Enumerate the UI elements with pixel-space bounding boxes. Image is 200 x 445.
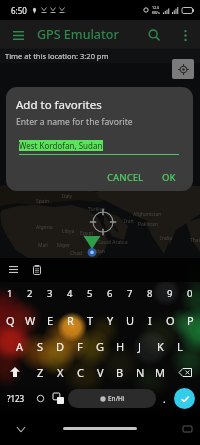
button[interactable]: Keyboard settings xyxy=(6,262,21,277)
button[interactable]: X xyxy=(50,359,70,385)
staticText: India xyxy=(160,235,172,242)
button[interactable]: Shift xyxy=(0,359,30,385)
staticText: 6:50 xyxy=(11,5,27,16)
staticText: Z xyxy=(37,365,44,380)
button[interactable]: F xyxy=(70,334,90,359)
button[interactable]: W xyxy=(20,307,40,334)
button[interactable]: O xyxy=(160,307,180,334)
staticText: ?123 xyxy=(7,393,25,404)
button[interactable]: B xyxy=(110,359,130,385)
staticText: B xyxy=(116,365,124,380)
staticText: En/Hi xyxy=(108,394,125,403)
button[interactable]: Y xyxy=(100,307,120,334)
staticText: KB/s xyxy=(152,10,160,15)
button[interactable]: R xyxy=(60,307,80,334)
staticText: P xyxy=(187,313,194,328)
button[interactable]: N xyxy=(130,359,150,385)
button[interactable]: C xyxy=(70,359,90,385)
button[interactable]: 3 xyxy=(40,280,60,307)
button[interactable]: Hide keyboard xyxy=(13,421,29,437)
button[interactable]: Enter xyxy=(174,388,195,409)
button[interactable]: I xyxy=(140,307,160,334)
staticText: L xyxy=(177,339,183,354)
staticText: Niger xyxy=(57,242,71,249)
staticText: M xyxy=(155,365,165,380)
button[interactable]: K xyxy=(150,334,170,359)
button[interactable]: H xyxy=(110,334,130,359)
button[interactable]: 6 xyxy=(100,280,120,307)
staticText: E xyxy=(47,313,54,328)
staticText: Spain xyxy=(36,198,50,205)
staticText: GPS Emulator xyxy=(37,26,119,43)
staticText: 7 xyxy=(127,287,133,300)
staticText: Enter a name for the favorite xyxy=(16,116,133,128)
button[interactable]: Translate xyxy=(48,385,68,412)
staticText: F xyxy=(77,339,83,354)
button[interactable]: M xyxy=(150,359,170,385)
staticText: Sudan xyxy=(90,248,105,255)
staticText: Iran xyxy=(124,218,134,225)
button[interactable]: More options xyxy=(173,23,197,47)
button[interactable]: Q xyxy=(0,307,20,334)
staticText: 3 xyxy=(47,287,53,300)
staticText: Time at this location: 3:20 pm xyxy=(5,51,109,61)
staticText: Libya xyxy=(62,228,75,235)
button[interactable]: Clipboard xyxy=(29,262,44,277)
button[interactable]: 4 xyxy=(60,280,80,307)
button[interactable]: Backspace xyxy=(170,359,200,385)
button[interactable]: P xyxy=(180,307,200,334)
staticText: West Kordofan, Sudan xyxy=(19,140,103,151)
staticText: Egypt xyxy=(80,230,94,237)
button[interactable]: ?123 xyxy=(0,385,32,412)
button[interactable]: 8 xyxy=(140,280,160,307)
button[interactable]: Open navigation drawer xyxy=(5,22,31,48)
button[interactable]: L xyxy=(170,334,190,359)
button[interactable]: U xyxy=(120,307,140,334)
staticText: V xyxy=(97,365,104,380)
button[interactable]: 1 xyxy=(0,280,20,307)
button[interactable]: 5 xyxy=(80,280,100,307)
staticText: 8 xyxy=(147,287,153,300)
staticText: H xyxy=(116,339,125,354)
button[interactable]: V xyxy=(90,359,110,385)
staticText: A xyxy=(16,339,24,354)
staticText: R xyxy=(67,313,74,328)
staticText: K xyxy=(157,339,164,354)
staticText: Y xyxy=(107,313,114,328)
button[interactable]: J xyxy=(130,334,150,359)
staticText: 9 xyxy=(167,287,173,300)
staticText: 6 xyxy=(107,287,113,300)
staticText: T xyxy=(87,313,94,328)
staticText: U xyxy=(126,313,135,328)
staticText: W xyxy=(25,313,36,328)
staticText: C xyxy=(77,365,84,380)
button[interactable]: Search xyxy=(141,22,167,48)
button[interactable]: D xyxy=(50,334,70,359)
button[interactable]: Z xyxy=(30,359,50,385)
button[interactable]: . xyxy=(156,385,172,412)
button[interactable]: T xyxy=(80,307,100,334)
staticText: 0 xyxy=(187,287,193,300)
button[interactable]: 7 xyxy=(120,280,140,307)
staticText: D xyxy=(56,339,65,354)
button[interactable]: OK xyxy=(156,166,182,189)
button[interactable]: CANCEL xyxy=(101,166,150,189)
staticText: O xyxy=(166,313,175,328)
staticText: CANCEL xyxy=(107,171,144,184)
staticText: N xyxy=(136,365,145,380)
staticText: I xyxy=(148,313,152,328)
button[interactable]: Emoji xyxy=(32,385,48,412)
button[interactable]: S xyxy=(30,334,50,359)
staticText: 2 xyxy=(27,287,33,300)
button[interactable]: En/Hi xyxy=(68,389,156,408)
button[interactable]: My location xyxy=(172,59,194,79)
button[interactable]: 9 xyxy=(160,280,180,307)
staticText: Chad xyxy=(70,250,83,257)
staticText: Türkiye xyxy=(88,206,106,213)
button[interactable]: 0 xyxy=(180,280,200,307)
button[interactable]: E xyxy=(40,307,60,334)
staticText: Pakistan xyxy=(138,221,158,228)
button[interactable]: A xyxy=(10,334,30,359)
button[interactable]: G xyxy=(90,334,110,359)
button[interactable]: 2 xyxy=(20,280,40,307)
